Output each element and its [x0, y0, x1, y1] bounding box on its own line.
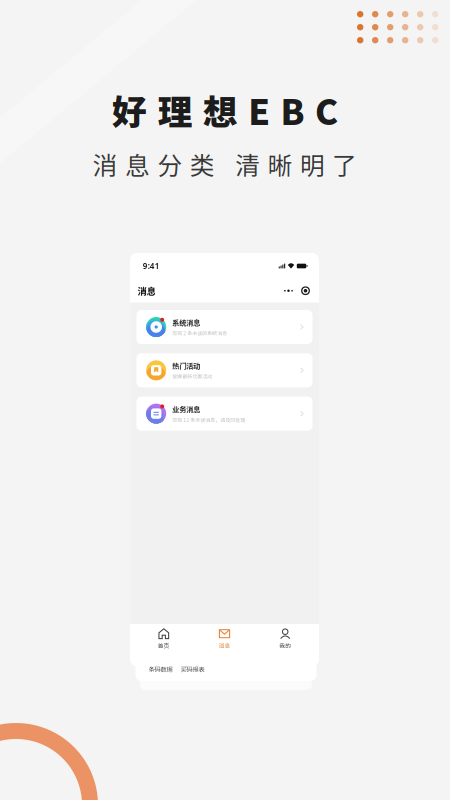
- staticText: 清: [235, 146, 260, 182]
- staticText: 买码报表: [180, 664, 204, 674]
- staticText: 消: [93, 146, 118, 182]
- button[interactable]: 系统消息: [136, 310, 312, 344]
- staticText: C: [315, 85, 338, 135]
- staticText: 您有 2 条未读的系统消息: [172, 329, 227, 337]
- staticText: 想: [203, 85, 238, 135]
- staticText: 业务消息: [172, 404, 200, 414]
- staticText: 我的: [279, 641, 291, 650]
- staticText: 好: [112, 85, 147, 135]
- button[interactable]: 消息: [194, 628, 255, 670]
- staticText: B: [281, 85, 305, 135]
- staticText: 掌握最新优惠活动: [172, 372, 212, 380]
- button[interactable]: More options: [280, 282, 297, 299]
- staticText: 您有 12 条未读消息，请及时处理: [172, 416, 245, 423]
- staticText: E: [248, 85, 270, 135]
- staticText: 了: [332, 146, 357, 182]
- staticText: 热门活动: [172, 360, 200, 371]
- staticText: 晰: [268, 146, 293, 182]
- staticText: 9:41: [143, 261, 160, 271]
- staticText: 首页: [158, 641, 170, 650]
- staticText: 消息: [218, 641, 230, 650]
- staticText: 条码数据: [148, 664, 172, 674]
- staticText: 类: [190, 146, 215, 182]
- button[interactable]: 我的: [255, 628, 315, 670]
- button[interactable]: 业务消息: [136, 397, 312, 431]
- button[interactable]: 首页: [133, 628, 194, 670]
- staticText: 分: [157, 146, 182, 182]
- button[interactable]: 热门活动: [136, 353, 312, 387]
- staticText: 明: [300, 146, 325, 182]
- staticText: 息: [125, 146, 150, 182]
- staticText: 消息: [137, 284, 155, 297]
- staticText: 理: [157, 85, 192, 135]
- staticText: 系统消息: [172, 317, 200, 328]
- button[interactable]: Scan: [297, 282, 314, 299]
